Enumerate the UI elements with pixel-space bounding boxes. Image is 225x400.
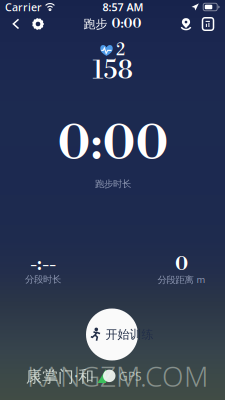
staticText: GPS	[119, 368, 142, 384]
staticText: 158	[92, 55, 133, 87]
staticText: -:--	[30, 253, 56, 276]
staticText: 康掌门·和	[26, 365, 94, 387]
staticText: 分段距离 m	[157, 273, 205, 286]
staticText: 0:00	[57, 115, 168, 174]
staticText: 跑步时长	[95, 178, 131, 190]
staticText: 8:57 AM	[103, 0, 144, 14]
button[interactable]: 开始训练	[67, 306, 157, 362]
button[interactable]: History	[197, 13, 219, 35]
button[interactable]: Back	[6, 13, 26, 35]
staticText: 开始训练	[105, 327, 153, 342]
staticText: KANGZM.COM	[27, 357, 208, 395]
staticText: Carrier	[5, 0, 42, 14]
staticText: 0	[175, 253, 188, 276]
staticText: 跑步	[83, 17, 107, 31]
staticText: 2	[116, 40, 125, 60]
staticText: 分段时长	[25, 274, 61, 285]
button[interactable]: Map	[175, 13, 197, 35]
button[interactable]: Settings	[26, 13, 50, 35]
staticText: 0:00	[111, 16, 141, 32]
